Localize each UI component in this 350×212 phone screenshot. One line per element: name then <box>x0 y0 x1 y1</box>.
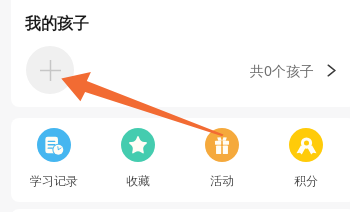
staticText: 积分 <box>268 173 344 188</box>
button[interactable]: 共0个孩子 <box>250 52 336 88</box>
button[interactable]: 活动 <box>184 128 260 188</box>
staticText: 共0个孩子 <box>250 61 315 80</box>
staticText: 我的孩子 <box>25 14 89 34</box>
button[interactable]: 学习记录 <box>16 128 92 188</box>
button[interactable]: 积分 <box>268 128 344 188</box>
staticText: 收藏 <box>100 173 176 188</box>
button[interactable]: 添加孩子 <box>26 46 74 94</box>
button[interactable]: 收藏 <box>100 128 176 188</box>
staticText: 活动 <box>184 173 260 188</box>
staticText: 学习记录 <box>16 173 92 188</box>
